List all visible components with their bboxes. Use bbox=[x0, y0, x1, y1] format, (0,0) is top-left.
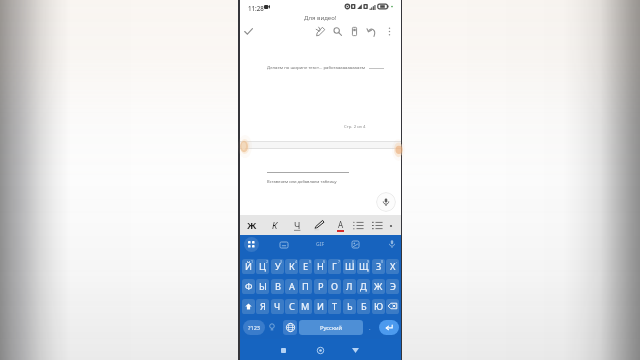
staticText: Щ bbox=[359, 260, 369, 273]
button[interactable]: Т bbox=[328, 299, 341, 314]
staticText: Н bbox=[317, 260, 324, 273]
button[interactable]: П bbox=[299, 279, 312, 294]
button[interactable]: И bbox=[314, 299, 327, 314]
button[interactable]: Home bbox=[315, 345, 326, 356]
staticText: Й bbox=[245, 260, 252, 273]
button[interactable]: Л bbox=[343, 279, 356, 294]
button[interactable]: Ш bbox=[343, 259, 356, 274]
staticText: Я bbox=[260, 300, 266, 313]
button[interactable]: Х bbox=[386, 259, 399, 274]
staticText: Вставляем или добавляем таблицу bbox=[267, 179, 337, 185]
button[interactable]: Русский bbox=[299, 320, 363, 335]
staticText: У bbox=[275, 260, 281, 273]
button[interactable]: Ж bbox=[244, 217, 260, 233]
button[interactable]: Й bbox=[242, 259, 255, 274]
staticText: ?123 bbox=[248, 324, 261, 332]
staticText: Д bbox=[360, 280, 367, 293]
button[interactable]: К bbox=[267, 217, 283, 233]
button[interactable]: К bbox=[285, 259, 298, 274]
button[interactable]: Ink bbox=[313, 24, 328, 39]
staticText: 7 bbox=[338, 259, 341, 264]
button[interactable]: Keyboard menu bbox=[244, 237, 259, 252]
button[interactable]: А bbox=[285, 279, 298, 294]
staticText: 4 bbox=[295, 259, 298, 264]
button[interactable]: Change language bbox=[283, 320, 297, 335]
button[interactable]: GIF bbox=[314, 239, 327, 249]
staticText: С bbox=[289, 300, 295, 313]
button[interactable]: Text color bbox=[332, 217, 348, 233]
button[interactable]: Г bbox=[328, 259, 341, 274]
button[interactable]: Search bbox=[330, 24, 345, 39]
button[interactable]: Clipboard bbox=[278, 239, 289, 250]
staticText: О bbox=[331, 280, 338, 293]
staticText: Е bbox=[303, 260, 309, 273]
staticText: 5 bbox=[309, 259, 312, 264]
button[interactable]: Numbered list bbox=[372, 221, 383, 230]
button[interactable]: Д bbox=[357, 279, 370, 294]
staticText: Л bbox=[346, 280, 353, 293]
staticText: Р bbox=[318, 280, 324, 293]
button[interactable]: Voice input bbox=[376, 192, 396, 212]
staticText: 1 bbox=[251, 259, 254, 264]
staticText: Стр. 2 из 4 bbox=[344, 123, 366, 129]
button[interactable]: Н bbox=[314, 259, 327, 274]
button[interactable] bbox=[386, 299, 399, 314]
other: Shift bbox=[245, 303, 252, 310]
staticText: Ы bbox=[259, 280, 267, 293]
staticText: 0 bbox=[381, 259, 384, 264]
button[interactable]: Ч bbox=[271, 299, 284, 314]
button[interactable] bbox=[242, 299, 255, 314]
staticText: А bbox=[289, 280, 295, 293]
button[interactable]: More options bbox=[382, 24, 397, 39]
button[interactable]: Я bbox=[256, 299, 269, 314]
staticText: Ц bbox=[259, 260, 266, 273]
button[interactable]: Ф bbox=[242, 279, 255, 294]
staticText: Ф bbox=[245, 280, 253, 293]
staticText: П bbox=[302, 280, 309, 293]
button[interactable]: Ю bbox=[372, 299, 385, 314]
button[interactable]: Ь bbox=[343, 299, 356, 314]
button[interactable]: Р bbox=[314, 279, 327, 294]
button[interactable]: Э bbox=[386, 279, 399, 294]
staticText: Ч bbox=[274, 300, 281, 313]
button[interactable]: Щ bbox=[357, 259, 370, 274]
button[interactable]: Voice typing bbox=[386, 238, 397, 249]
button[interactable]: . bbox=[365, 320, 375, 335]
staticText: Э bbox=[390, 280, 396, 293]
other: Backspace bbox=[388, 303, 397, 309]
button[interactable]: Ж bbox=[372, 279, 385, 294]
staticText: Делаем по ширине текст... работааааааааа… bbox=[267, 64, 366, 70]
staticText: A bbox=[338, 219, 344, 230]
staticText: Ш bbox=[345, 260, 355, 273]
button[interactable]: Stickers bbox=[350, 239, 361, 250]
staticText: Русский bbox=[320, 324, 343, 332]
button[interactable]: Recent apps bbox=[278, 345, 289, 356]
button[interactable]: С bbox=[285, 299, 298, 314]
button[interactable]: Ч bbox=[289, 217, 305, 233]
button[interactable]: ?123 bbox=[243, 320, 265, 335]
staticText: - bbox=[396, 259, 398, 264]
button[interactable]: Emoji bbox=[267, 322, 277, 332]
button[interactable]: Bulleted list bbox=[353, 221, 364, 230]
staticText: 2 bbox=[266, 259, 269, 264]
button[interactable]: Undo bbox=[364, 24, 379, 39]
button[interactable]: Back bbox=[350, 345, 361, 356]
button[interactable]: Е bbox=[299, 259, 312, 274]
button[interactable]: О bbox=[328, 279, 341, 294]
staticText: Ч bbox=[294, 219, 301, 232]
button[interactable]: Layout bbox=[347, 24, 362, 39]
staticText: Ь bbox=[347, 300, 353, 313]
button[interactable]: З bbox=[372, 259, 385, 274]
button[interactable]: М bbox=[299, 299, 312, 314]
button[interactable]: Done bbox=[241, 24, 256, 39]
staticText: И bbox=[317, 300, 324, 313]
button[interactable]: У bbox=[271, 259, 284, 274]
button[interactable]: Enter bbox=[379, 320, 399, 335]
button[interactable]: Ы bbox=[256, 279, 269, 294]
button[interactable]: Highlight bbox=[311, 217, 327, 233]
staticText: Б bbox=[361, 300, 367, 313]
button[interactable]: Ц bbox=[256, 259, 269, 274]
staticText: Ж bbox=[374, 280, 383, 293]
button[interactable]: Б bbox=[357, 299, 370, 314]
button[interactable]: В bbox=[271, 279, 284, 294]
